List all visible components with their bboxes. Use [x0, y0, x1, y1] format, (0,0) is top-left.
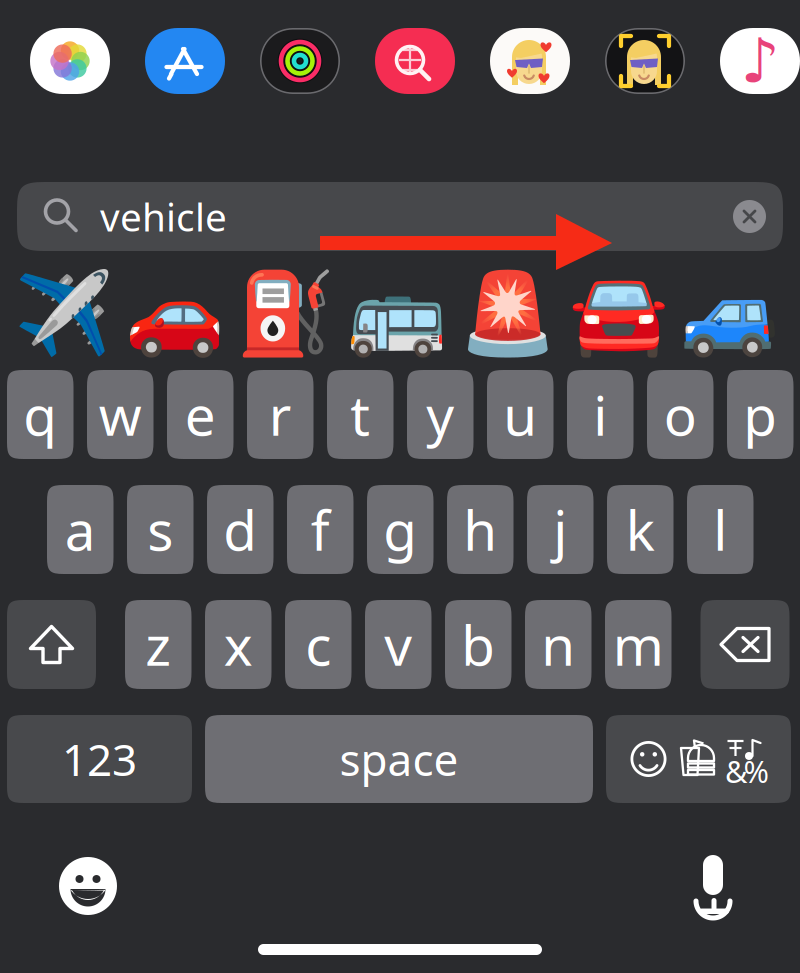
button[interactable]: i: [567, 370, 633, 459]
staticText: 🚗: [124, 268, 224, 360]
staticText: h: [463, 493, 497, 566]
staticText: 🚨: [457, 268, 557, 360]
staticText: x: [224, 608, 253, 681]
button[interactable]: d: [207, 485, 273, 574]
button[interactable]: ✈️: [8, 272, 119, 356]
button[interactable]: b: [445, 600, 511, 689]
button[interactable]: m: [605, 600, 671, 689]
staticText: &: [725, 751, 747, 791]
staticText: k: [626, 493, 655, 566]
button[interactable]: e: [167, 370, 233, 459]
button[interactable]: 🚌: [341, 272, 452, 356]
button[interactable]: Emoji and symbols: [606, 715, 791, 803]
button[interactable]: Emoji keyboard: [59, 857, 117, 915]
button[interactable]: App Store: [145, 28, 225, 94]
button[interactable]: g: [367, 485, 433, 574]
button[interactable]: Memoji stickers: [490, 28, 570, 94]
staticText: n: [541, 608, 575, 681]
button[interactable]: o: [647, 370, 713, 459]
button[interactable]: z: [125, 600, 191, 689]
staticText: j: [553, 493, 567, 566]
button[interactable]: t: [327, 370, 393, 459]
staticText: space: [339, 730, 458, 788]
button[interactable]: ⛽️: [230, 272, 341, 356]
staticText: %: [743, 751, 768, 791]
staticText: u: [503, 378, 537, 451]
button[interactable]: r: [247, 370, 313, 459]
button[interactable]: n: [525, 600, 591, 689]
button[interactable]: c: [285, 600, 351, 689]
staticText: f: [311, 493, 330, 566]
staticText: s: [147, 493, 173, 566]
staticText: e: [185, 378, 216, 451]
staticText: 123: [62, 730, 137, 788]
staticText: ⛽️: [235, 268, 335, 360]
staticText: c: [305, 608, 331, 681]
button[interactable]: vehicle: [17, 182, 783, 251]
button[interactable]: f: [287, 485, 353, 574]
button[interactable]: Activity: [260, 28, 340, 94]
staticText: z: [145, 608, 171, 681]
button[interactable]: w: [87, 370, 153, 459]
button[interactable]: h: [447, 485, 513, 574]
button[interactable]: y: [407, 370, 473, 459]
staticText: i: [593, 378, 607, 451]
staticText: 🚙: [679, 268, 779, 360]
button[interactable]: Music: [720, 28, 800, 94]
button[interactable]: u: [487, 370, 553, 459]
button[interactable]: j: [527, 485, 593, 574]
staticText: vehicle: [100, 191, 227, 242]
button[interactable]: 🚨: [452, 272, 563, 356]
button[interactable]: 🚙: [674, 272, 785, 356]
button[interactable]: space: [205, 715, 593, 803]
staticText: r: [269, 378, 292, 451]
button[interactable]: a: [47, 485, 113, 574]
staticText: ♪: [740, 26, 779, 96]
button[interactable]: 🚗: [119, 272, 230, 356]
button[interactable]: v: [365, 600, 431, 689]
staticText: l: [713, 493, 727, 566]
staticText: d: [223, 493, 257, 566]
button[interactable]: q: [7, 370, 73, 459]
staticText: w: [99, 378, 142, 451]
staticText: y: [426, 378, 454, 451]
staticText: 🚌: [346, 268, 446, 360]
staticText: b: [461, 608, 495, 681]
staticText: 🚘: [568, 268, 668, 360]
button[interactable]: Dictate: [690, 855, 736, 917]
staticText: q: [23, 378, 57, 451]
staticText: p: [743, 378, 777, 451]
staticText: t: [350, 378, 370, 451]
button[interactable]: Image search: [375, 28, 455, 94]
button[interactable]: l: [687, 485, 753, 574]
staticText: g: [383, 493, 417, 566]
button[interactable]: 123: [7, 715, 192, 803]
button[interactable]: 🚘: [563, 272, 674, 356]
button[interactable]: s: [127, 485, 193, 574]
button[interactable]: k: [607, 485, 673, 574]
button[interactable]: Shift: [7, 600, 96, 689]
staticText: v: [384, 608, 412, 681]
staticText: m: [613, 608, 664, 681]
button[interactable]: p: [727, 370, 793, 459]
button[interactable]: Memoji: [605, 28, 685, 94]
staticText: a: [65, 493, 96, 566]
staticText: ✈️: [13, 268, 113, 360]
button[interactable]: x: [205, 600, 271, 689]
button[interactable]: Photos: [30, 28, 110, 94]
button[interactable]: Delete: [700, 600, 789, 689]
staticText: o: [664, 378, 697, 451]
